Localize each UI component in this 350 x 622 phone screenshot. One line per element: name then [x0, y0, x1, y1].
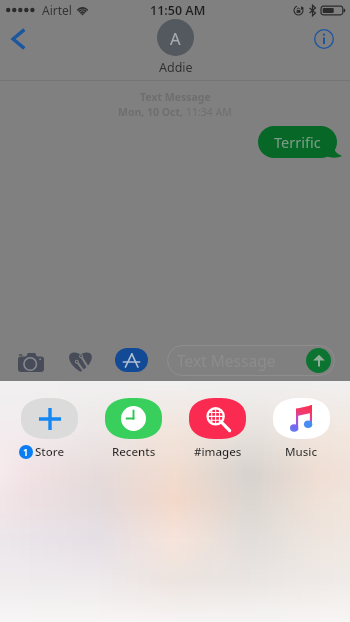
button[interactable]: Music	[273, 398, 330, 460]
staticText: Store	[35, 444, 64, 460]
button[interactable]: Terrific	[258, 126, 337, 158]
button[interactable]: Text Message	[167, 345, 335, 376]
button[interactable]: Details	[311, 26, 337, 52]
staticText: #images	[194, 444, 242, 460]
button[interactable]: Recents	[105, 398, 162, 460]
staticText: Text Message	[140, 90, 211, 104]
button[interactable]: Camera	[12, 348, 50, 376]
staticText: Airtel	[42, 2, 72, 18]
button[interactable]: Send	[306, 348, 331, 373]
button[interactable]: App Store	[115, 348, 148, 372]
button[interactable]: A	[157, 19, 194, 76]
staticText: Recents	[112, 444, 156, 460]
button[interactable]: #images	[189, 398, 246, 460]
button[interactable]: Back	[1, 24, 35, 54]
staticText: A	[170, 27, 181, 49]
staticText: 11:34 AM	[186, 105, 232, 119]
button[interactable]: Digital Touch	[64, 346, 96, 374]
staticText: 11:50 AM	[150, 2, 206, 19]
staticText: Addie	[159, 59, 193, 76]
button[interactable]: Store	[21, 398, 78, 460]
staticText: Terrific	[274, 132, 321, 152]
staticText: Text Message	[177, 350, 276, 371]
staticText: Mon, 10 Oct,	[118, 105, 186, 119]
staticText: 1	[23, 446, 29, 459]
staticText: Music	[285, 444, 318, 460]
